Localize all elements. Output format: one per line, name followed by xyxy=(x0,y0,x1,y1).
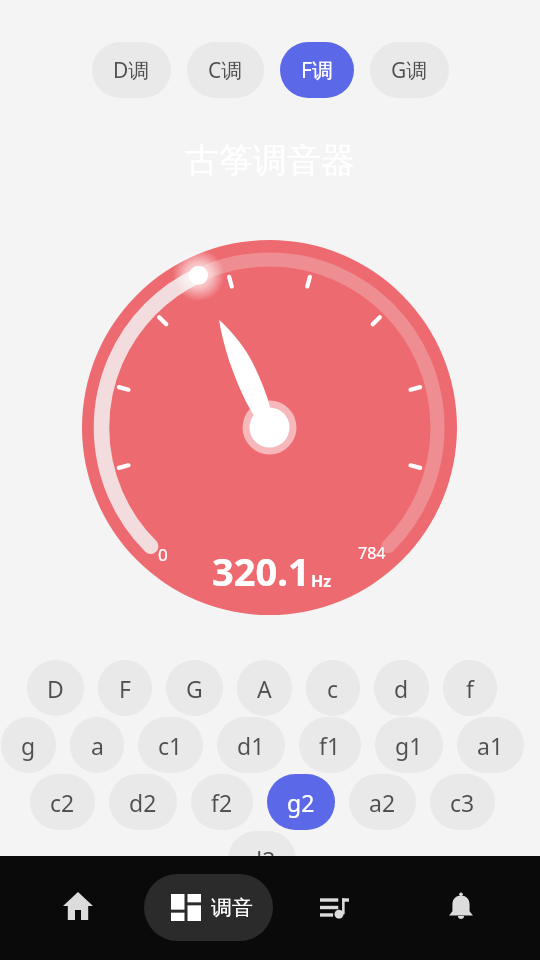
button[interactable]: Home xyxy=(54,882,102,930)
button[interactable]: D xyxy=(27,660,84,716)
staticText: C调 xyxy=(208,56,243,85)
staticText: d2 xyxy=(129,787,157,818)
button[interactable]: a xyxy=(70,717,124,773)
staticText: c1 xyxy=(158,730,183,761)
button[interactable]: d xyxy=(374,660,429,716)
staticText: Hz xyxy=(311,570,332,592)
staticText: A xyxy=(257,673,272,704)
staticText: D调 xyxy=(113,56,150,85)
button[interactable]: g xyxy=(1,717,56,773)
staticText: F xyxy=(119,673,131,704)
staticText: f1 xyxy=(319,730,341,761)
staticText: 320.1 xyxy=(212,545,310,597)
button[interactable]: 调音 xyxy=(144,874,273,941)
staticText: d xyxy=(394,673,409,704)
button[interactable]: F调 xyxy=(280,42,354,98)
button[interactable]: g1 xyxy=(375,717,443,773)
button[interactable]: G xyxy=(166,660,223,716)
staticText: a1 xyxy=(477,730,504,761)
button[interactable]: g2 xyxy=(267,774,335,830)
staticText: F调 xyxy=(301,56,333,85)
button[interactable]: c2 xyxy=(30,774,95,830)
button[interactable]: d3 xyxy=(228,831,296,887)
button[interactable]: f2 xyxy=(191,774,253,830)
staticText: d1 xyxy=(237,730,265,761)
button[interactable]: C调 xyxy=(187,42,264,98)
staticText: 0 xyxy=(158,543,168,566)
button[interactable]: Notifications xyxy=(437,883,485,931)
staticText: g1 xyxy=(395,730,423,761)
button[interactable]: Playlist xyxy=(310,884,358,932)
button[interactable]: G调 xyxy=(370,42,449,98)
button[interactable]: A xyxy=(237,660,292,716)
button[interactable]: f xyxy=(443,660,497,716)
staticText: a2 xyxy=(369,787,396,818)
button[interactable]: F xyxy=(98,660,152,716)
staticText: f xyxy=(466,673,474,704)
button[interactable]: a1 xyxy=(457,717,524,773)
staticText: d3 xyxy=(248,844,276,875)
staticText: a xyxy=(91,730,104,761)
staticText: D xyxy=(47,673,64,704)
button[interactable]: D调 xyxy=(92,42,171,98)
button[interactable]: f1 xyxy=(299,717,361,773)
button[interactable]: d1 xyxy=(217,717,285,773)
staticText: G调 xyxy=(391,56,428,85)
staticText: g xyxy=(21,730,36,761)
staticText: c xyxy=(327,673,339,704)
staticText: c3 xyxy=(450,787,475,818)
staticText: f2 xyxy=(211,787,233,818)
button[interactable]: a2 xyxy=(349,774,416,830)
staticText: c2 xyxy=(50,787,75,818)
staticText: G xyxy=(186,673,203,704)
button[interactable]: c1 xyxy=(138,717,203,773)
staticText: 784 xyxy=(358,542,386,564)
button[interactable]: c xyxy=(306,660,360,716)
staticText: 调音 xyxy=(211,895,253,921)
button[interactable]: d2 xyxy=(109,774,177,830)
button[interactable]: c3 xyxy=(430,774,495,830)
staticText: g2 xyxy=(287,787,315,818)
